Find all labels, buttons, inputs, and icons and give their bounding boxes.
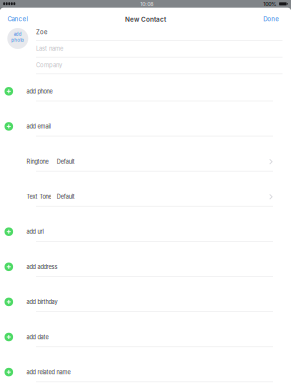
staticText: Text Tone [26,193,51,200]
button[interactable]: add phone [0,79,291,101]
staticText: add [14,32,22,37]
button[interactable]: add related name [0,360,291,382]
staticText: Ringtone [26,158,48,165]
button[interactable]: Ringtone [0,150,291,172]
staticText: add url [26,229,43,235]
button[interactable]: Done [252,13,282,26]
button[interactable]: Company [0,54,291,69]
button[interactable]: add address [0,255,291,277]
button[interactable]: add birthday [0,290,291,312]
staticText: Zoe [36,29,47,35]
button[interactable]: Zoe [0,21,291,36]
staticText: add date [26,334,48,340]
staticText: add email [26,123,50,130]
button[interactable]: Last name [0,37,291,52]
staticText: Last name [36,45,63,52]
staticText: add address [26,264,57,270]
button[interactable]: Cancel [0,13,32,26]
staticText: Default [57,193,75,200]
staticText: Company [36,62,62,68]
button[interactable]: Text Tone [0,185,291,207]
staticText: photo [11,38,24,43]
staticText: 100% [263,1,276,7]
button[interactable]: add url [0,220,291,242]
button[interactable]: add email [0,114,291,136]
staticText: Done [263,16,279,23]
button[interactable]: add date [0,325,291,347]
staticText: Default [57,158,75,165]
staticText: add related name [26,369,70,375]
staticText: Cancel [8,16,28,23]
staticText: 10:08 [140,1,153,7]
staticText: New Contact [125,16,166,23]
staticText: add birthday [26,299,57,305]
staticText: add phone [26,88,52,95]
button[interactable]: Add photo [7,28,28,49]
